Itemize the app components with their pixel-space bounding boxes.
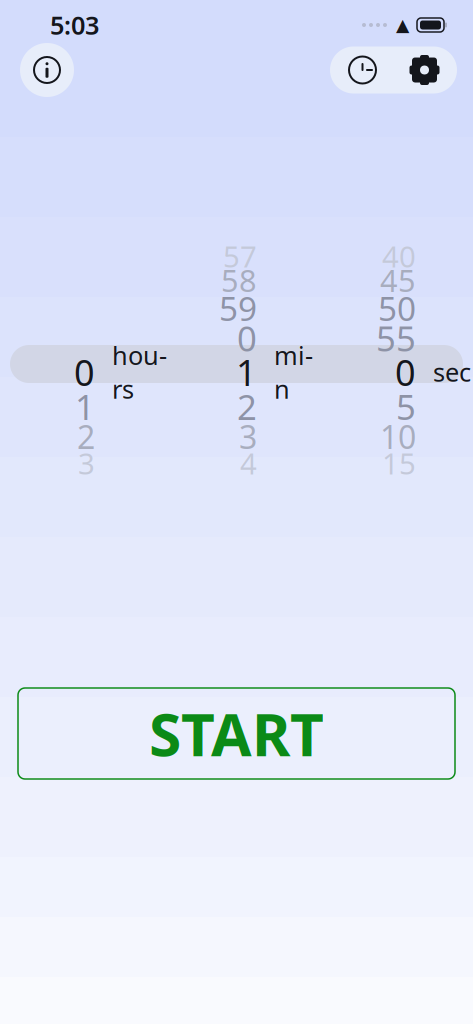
- staticText: 3: [239, 415, 257, 458]
- staticText: 4: [240, 443, 257, 482]
- staticText: 55: [376, 315, 416, 361]
- button[interactable]: Settings: [393, 46, 455, 93]
- staticText: hours: [112, 338, 167, 406]
- staticText: 3: [78, 443, 95, 482]
- staticText: 45: [380, 260, 416, 300]
- staticText: min: [274, 338, 313, 406]
- staticText: 15: [382, 443, 416, 482]
- staticText: 2: [237, 383, 257, 429]
- button[interactable]: Timer: [331, 46, 393, 93]
- staticText: 40: [382, 236, 416, 275]
- staticText: 58: [221, 260, 257, 300]
- staticText: sec: [433, 355, 471, 389]
- button[interactable]: Info: [20, 43, 74, 97]
- staticText: 0: [74, 348, 95, 396]
- staticText: 0: [237, 315, 257, 361]
- staticText: 1: [75, 383, 95, 429]
- staticText: 5:03: [50, 8, 99, 42]
- staticText: 2: [77, 415, 95, 458]
- staticText: START: [149, 694, 324, 772]
- staticText: 57: [223, 236, 257, 275]
- staticText: 10: [380, 415, 416, 458]
- staticText: ▲: [396, 15, 409, 35]
- staticText: 5: [396, 383, 416, 429]
- staticText: 59: [219, 286, 257, 330]
- staticText: 50: [378, 286, 416, 330]
- button[interactable]: START: [18, 688, 455, 779]
- staticText: 1: [236, 348, 257, 396]
- staticText: 0: [395, 348, 416, 396]
